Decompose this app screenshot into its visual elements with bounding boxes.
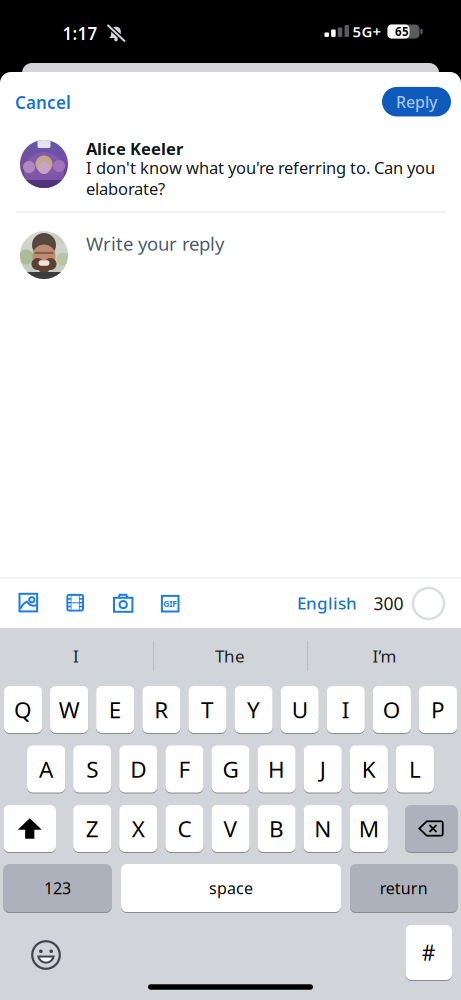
staticText: return bbox=[380, 877, 428, 899]
staticText: Q bbox=[14, 694, 32, 725]
staticText: J bbox=[320, 754, 326, 784]
button[interactable]: Reply bbox=[382, 87, 451, 116]
staticText: Y bbox=[247, 694, 260, 725]
staticText: R bbox=[154, 694, 168, 725]
button[interactable]: Emoji bbox=[31, 940, 61, 970]
staticText: Cancel bbox=[15, 91, 71, 114]
button[interactable]: B bbox=[257, 804, 296, 852]
button[interactable]: P bbox=[419, 685, 457, 733]
staticText: I bbox=[73, 644, 79, 668]
button[interactable]: V bbox=[211, 804, 250, 852]
button[interactable]: Add GIF bbox=[161, 595, 179, 612]
button[interactable]: U bbox=[281, 685, 319, 733]
staticText: N bbox=[314, 813, 331, 844]
staticText: U bbox=[292, 694, 308, 725]
button[interactable]: A bbox=[27, 745, 65, 793]
button[interactable]: Q bbox=[4, 685, 42, 733]
staticText: K bbox=[362, 754, 376, 784]
button[interactable]: G bbox=[211, 745, 250, 793]
staticText: The bbox=[215, 644, 245, 668]
button[interactable]: H bbox=[257, 745, 296, 793]
staticText: English bbox=[297, 591, 357, 615]
button[interactable]: S bbox=[73, 745, 111, 793]
button[interactable]: I bbox=[327, 685, 365, 733]
staticText: L bbox=[409, 754, 421, 784]
staticText: Reply bbox=[396, 91, 437, 113]
staticText: I bbox=[342, 694, 350, 725]
button[interactable]: Y bbox=[234, 685, 273, 733]
staticText: I don't know what you're referring to. C… bbox=[86, 156, 435, 179]
staticText: W bbox=[59, 694, 80, 725]
staticText: # bbox=[422, 938, 436, 967]
staticText: D bbox=[130, 754, 146, 784]
button[interactable]: Shift bbox=[3, 804, 56, 852]
button[interactable]: K bbox=[350, 745, 388, 793]
staticText: I’m bbox=[372, 644, 396, 668]
staticText: B bbox=[269, 813, 284, 844]
button[interactable]: space bbox=[121, 863, 341, 912]
button[interactable]: 123 bbox=[3, 863, 111, 912]
staticText: elaborate? bbox=[86, 177, 165, 200]
button[interactable]: English bbox=[297, 591, 357, 615]
button[interactable]: Add photo bbox=[18, 593, 38, 612]
button[interactable]: O bbox=[373, 685, 411, 733]
button[interactable]: E bbox=[96, 685, 134, 733]
staticText: S bbox=[86, 754, 98, 784]
staticText: E bbox=[109, 694, 122, 725]
button[interactable]: L bbox=[396, 745, 434, 793]
staticText: 300 bbox=[373, 592, 403, 615]
staticText: GIF bbox=[163, 598, 177, 609]
staticText: V bbox=[223, 813, 237, 844]
button[interactable]: The bbox=[165, 634, 295, 678]
staticText: Write your reply bbox=[86, 231, 224, 256]
staticText: O bbox=[383, 694, 401, 725]
staticText: P bbox=[431, 694, 445, 725]
button[interactable]: N bbox=[304, 804, 342, 852]
button[interactable]: D bbox=[119, 745, 157, 793]
staticText: 65 bbox=[395, 24, 409, 39]
staticText: G bbox=[222, 754, 238, 784]
staticText: 1:17 bbox=[62, 22, 97, 45]
staticText: C bbox=[177, 813, 191, 844]
staticText: A bbox=[39, 754, 53, 784]
button[interactable]: return bbox=[350, 863, 457, 912]
button[interactable]: X bbox=[119, 804, 157, 852]
staticText: Z bbox=[86, 813, 99, 844]
staticText: H bbox=[268, 754, 285, 784]
staticText: 123 bbox=[44, 877, 71, 899]
staticText: Alice Keeler bbox=[86, 137, 183, 160]
button[interactable]: Add video bbox=[66, 594, 84, 611]
button[interactable]: I bbox=[11, 634, 141, 678]
button[interactable]: Z bbox=[73, 804, 111, 852]
button[interactable]: # bbox=[405, 924, 452, 980]
button[interactable]: F bbox=[165, 745, 203, 793]
button[interactable]: R bbox=[142, 685, 180, 733]
staticText: T bbox=[201, 694, 214, 725]
button[interactable]: Open camera bbox=[113, 594, 133, 613]
button[interactable]: M bbox=[350, 804, 388, 852]
staticText: space bbox=[209, 877, 253, 899]
button[interactable]: Delete bbox=[405, 804, 457, 852]
staticText: 5G+ bbox=[352, 21, 381, 42]
button[interactable]: C bbox=[165, 804, 203, 852]
staticText: M bbox=[359, 813, 379, 844]
button[interactable]: Cancel bbox=[15, 91, 71, 114]
button[interactable]: J bbox=[304, 745, 342, 793]
button[interactable]: T bbox=[188, 685, 226, 733]
staticText: F bbox=[178, 754, 190, 784]
button[interactable]: I’m bbox=[319, 634, 449, 678]
button[interactable]: W bbox=[50, 685, 88, 733]
staticText: X bbox=[132, 813, 145, 844]
